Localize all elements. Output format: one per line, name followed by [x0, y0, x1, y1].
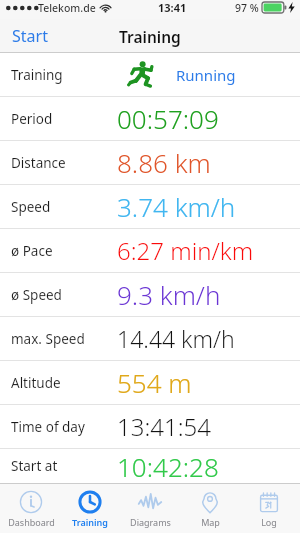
button[interactable]: Start: [0, 20, 60, 52]
staticText: Dashboard: [8, 516, 55, 528]
staticText: Running: [176, 65, 236, 85]
staticText: Altitude: [11, 374, 61, 392]
button[interactable]: max. Speed: [0, 317, 300, 360]
staticText: max. Speed: [11, 330, 85, 348]
button[interactable]: ø Speed: [0, 273, 300, 316]
button[interactable]: Distance: [0, 141, 300, 184]
button[interactable]: ø Pace: [0, 229, 300, 272]
button[interactable]: Time of day: [0, 405, 300, 448]
staticText: Start: [12, 25, 48, 47]
staticText: ø Pace: [11, 242, 53, 260]
button[interactable]: Log: [240, 484, 298, 533]
staticText: Start at: [11, 457, 58, 475]
staticText: 9.3 km/h: [117, 277, 221, 312]
staticText: 97 %: [235, 1, 259, 15]
staticText: Period: [11, 110, 53, 128]
staticText: Distance: [11, 154, 66, 172]
button[interactable]: Training: [0, 53, 300, 96]
staticText: 10:42:28: [117, 449, 219, 483]
staticText: Telekom.de: [38, 1, 96, 15]
staticText: Training: [11, 66, 63, 84]
staticText: 3.74 km/h: [117, 189, 236, 224]
button[interactable]: Diagrams: [121, 484, 179, 533]
button[interactable]: Dashboard: [2, 484, 60, 533]
button[interactable]: Map: [181, 484, 239, 533]
staticText: ø Speed: [11, 286, 62, 304]
staticText: Time of day: [11, 418, 85, 436]
staticText: 554 m: [117, 365, 192, 400]
staticText: Map: [201, 516, 220, 528]
staticText: 6:27 min/km: [117, 234, 254, 267]
staticText: Training: [72, 516, 108, 528]
staticText: 8.86 km: [117, 145, 211, 180]
staticText: 13:41: [158, 0, 187, 15]
button[interactable]: Speed: [0, 185, 300, 228]
staticText: Log: [261, 516, 277, 528]
staticText: Speed: [11, 198, 51, 216]
button[interactable]: Start at: [0, 449, 300, 483]
staticText: Diagrams: [130, 516, 171, 528]
button[interactable]: Period: [0, 97, 300, 140]
staticText: 13:41:54: [117, 410, 211, 443]
staticText: 14.44 km/h: [117, 323, 235, 354]
button[interactable]: Altitude: [0, 361, 300, 404]
staticText: 00:57:09: [117, 101, 219, 136]
other: Running activity: [127, 60, 157, 90]
button[interactable]: Training: [61, 484, 119, 533]
staticText: Training: [119, 26, 181, 47]
